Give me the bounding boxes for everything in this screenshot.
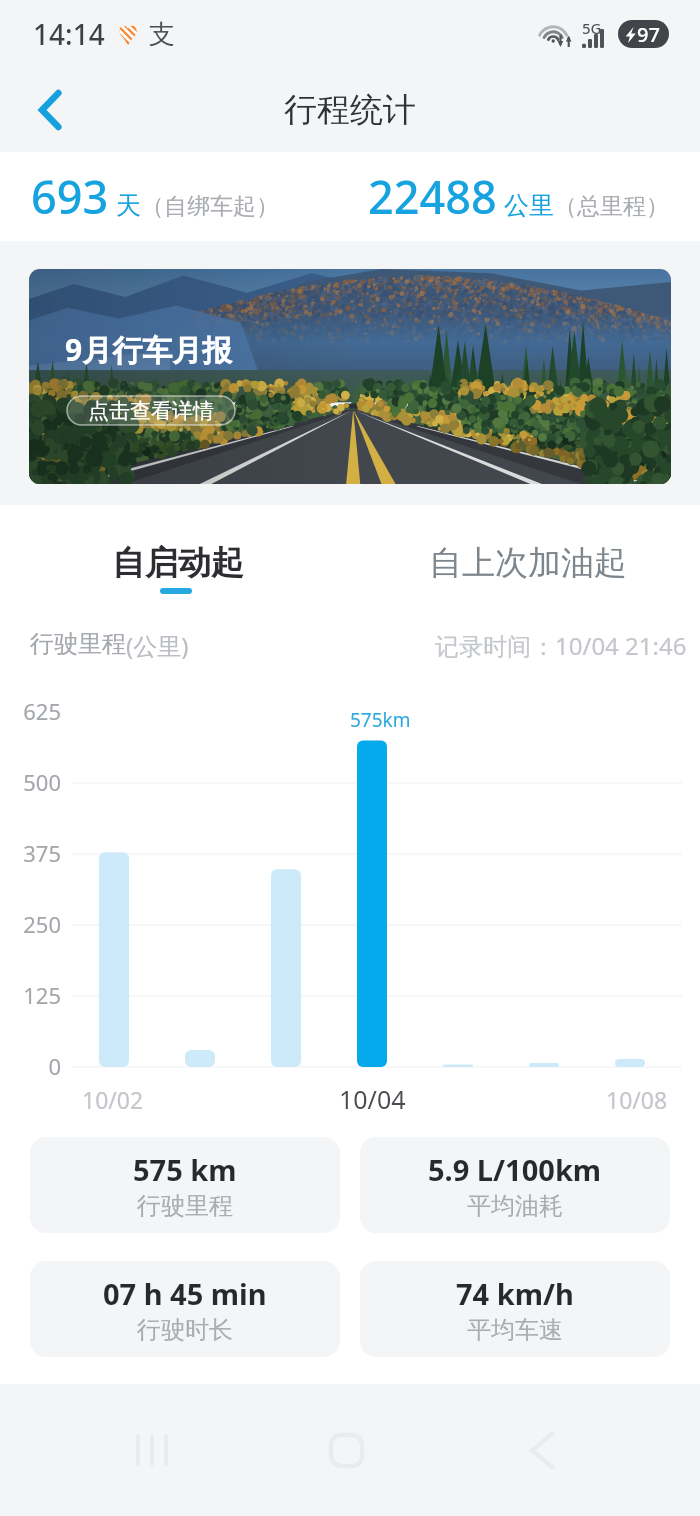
button[interactable]: 575 km bbox=[30, 1137, 340, 1233]
staticText: 74 km/h bbox=[456, 1274, 574, 1313]
staticText: 500 bbox=[15, 767, 61, 797]
staticText: 行程统计 bbox=[284, 89, 416, 131]
staticText: 10/08 bbox=[606, 1084, 668, 1115]
button[interactable]: 5.9 L/100km bbox=[360, 1137, 670, 1233]
staticText: 693 bbox=[31, 166, 109, 227]
staticText: 5G bbox=[582, 18, 602, 38]
button[interactable] bbox=[400, 521, 650, 601]
button[interactable]: 点击查看详情 bbox=[67, 396, 235, 425]
staticText: （自绑车起） bbox=[141, 192, 279, 221]
staticText: 平均车速 bbox=[467, 1315, 563, 1345]
staticText: 625 bbox=[15, 696, 61, 726]
staticText: 575 km bbox=[133, 1150, 237, 1189]
staticText: 记录时间：10/04 21:46 bbox=[435, 629, 687, 662]
staticText: 125 bbox=[15, 980, 61, 1010]
staticText: 自启动起 bbox=[112, 542, 244, 584]
staticText: 公里 bbox=[504, 190, 554, 221]
staticText: （总里程） bbox=[554, 192, 669, 221]
button[interactable]: 07 h 45 min bbox=[30, 1261, 340, 1357]
staticText: 0 bbox=[15, 1051, 61, 1081]
staticText: 行驶时长 bbox=[137, 1315, 233, 1345]
staticText: 14:14 bbox=[33, 15, 105, 53]
staticText: 10/02 bbox=[82, 1084, 144, 1115]
staticText: 22488 bbox=[368, 166, 497, 227]
staticText: 行驶里程 bbox=[30, 629, 126, 659]
button[interactable]: 9月行车月报 bbox=[29, 269, 671, 484]
staticText: 平均油耗 bbox=[467, 1191, 563, 1221]
staticText: 250 bbox=[15, 909, 61, 939]
staticText: 97 bbox=[637, 21, 660, 48]
staticText: 375 bbox=[15, 838, 61, 868]
button[interactable]: Back bbox=[18, 78, 82, 142]
staticText: 行驶里程 bbox=[137, 1191, 233, 1221]
staticText: 07 h 45 min bbox=[103, 1274, 267, 1313]
staticText: 天 bbox=[116, 190, 141, 221]
button[interactable]: 74 km/h bbox=[360, 1261, 670, 1357]
staticText: (公里) bbox=[126, 629, 189, 662]
staticText: 9月行车月报 bbox=[65, 329, 233, 370]
staticText: 自上次加油起 bbox=[429, 542, 627, 584]
staticText: 5.9 L/100km bbox=[428, 1150, 602, 1189]
staticText: 支 bbox=[149, 18, 175, 51]
staticText: 575km bbox=[350, 707, 411, 733]
button[interactable] bbox=[70, 521, 290, 601]
staticText: 点击查看详情 bbox=[88, 398, 214, 424]
staticText: 10/04 bbox=[339, 1082, 406, 1116]
